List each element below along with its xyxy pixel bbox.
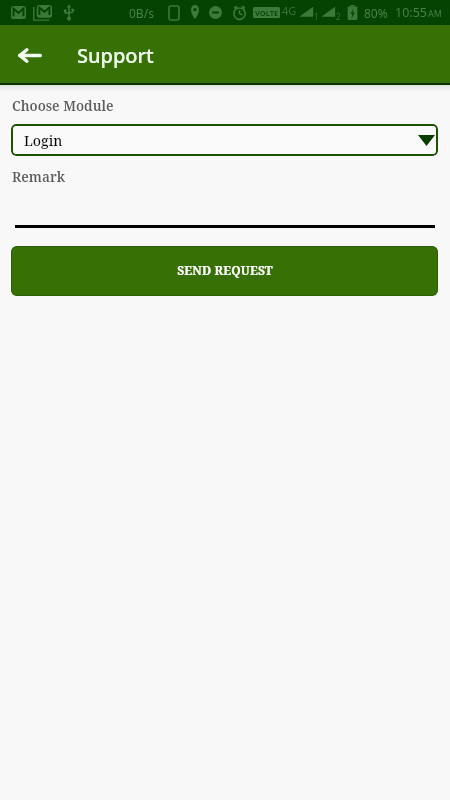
button[interactable]: Remark	[0, 168, 450, 228]
button[interactable]: SEND REQUEST	[11, 246, 438, 296]
staticText: 0B/s	[129, 5, 154, 21]
staticText: 10:55	[395, 4, 427, 21]
staticText: AM	[428, 7, 442, 19]
staticText: 2	[336, 11, 341, 22]
button[interactable]: Login	[11, 124, 438, 156]
staticText: 1	[314, 11, 319, 22]
button[interactable]: Back	[6, 31, 54, 79]
staticText: 80%	[364, 5, 388, 21]
staticText: Login	[24, 131, 63, 150]
staticText: Support	[77, 42, 154, 69]
staticText: VOLTE	[255, 8, 279, 18]
staticText: SEND REQUEST	[177, 262, 273, 278]
staticText: 4G	[282, 3, 297, 18]
staticText: Choose Module	[12, 97, 114, 115]
staticText: Remark	[12, 168, 66, 186]
